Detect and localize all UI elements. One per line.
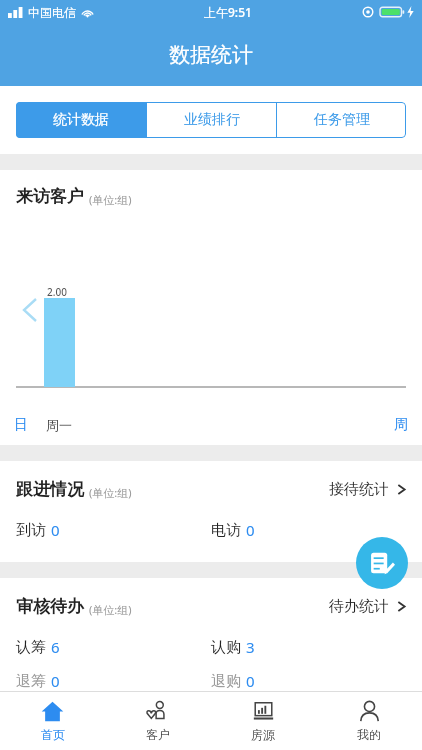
staticText: 房源: [251, 727, 275, 742]
button[interactable]: New record: [356, 537, 408, 589]
staticText: 电访: [211, 521, 241, 540]
staticText: 中国电信: [28, 5, 76, 20]
button[interactable]: 待办统计: [329, 597, 406, 616]
staticText: 统计数据: [53, 111, 109, 129]
button[interactable]: 客户: [105, 692, 210, 750]
staticText: 0: [51, 671, 60, 691]
staticText: 任务管理: [314, 111, 370, 129]
button[interactable]: 首页: [0, 692, 105, 750]
staticText: 3: [246, 637, 255, 657]
staticText: 首页: [41, 727, 65, 742]
staticText: 周: [394, 416, 408, 434]
staticText: 2.00: [47, 285, 67, 299]
staticText: 来访客户: [16, 186, 84, 207]
button[interactable]: 统计数据: [16, 102, 146, 138]
staticText: (单位:组): [89, 602, 132, 617]
staticText: 审核待办: [16, 596, 84, 617]
staticText: 待办统计: [329, 597, 389, 616]
staticText: 认筹: [16, 638, 46, 657]
staticText: 认购: [211, 638, 241, 657]
staticText: 0: [51, 520, 60, 540]
staticText: 我的: [357, 727, 381, 742]
staticText: 周一: [46, 417, 72, 433]
staticText: 到访: [16, 521, 46, 540]
staticText: 接待统计: [329, 480, 389, 499]
staticText: 6: [51, 637, 60, 657]
staticText: 0: [246, 671, 255, 691]
button[interactable]: 我的: [316, 692, 422, 750]
button[interactable]: 房源: [210, 692, 316, 750]
staticText: 退购: [211, 672, 241, 691]
staticText: 客户: [146, 727, 170, 742]
staticText: 退筹: [16, 672, 46, 691]
button[interactable]: 周: [394, 416, 408, 434]
staticText: 日: [14, 416, 28, 434]
staticText: 跟进情况: [16, 479, 84, 500]
button[interactable]: 任务管理: [277, 102, 406, 138]
button[interactable]: 业绩排行: [147, 102, 276, 138]
staticText: 数据统计: [169, 42, 253, 68]
staticText: (单位:组): [89, 485, 132, 500]
staticText: 上午9:51: [204, 4, 252, 20]
staticText: 业绩排行: [184, 111, 240, 129]
staticText: 0: [246, 520, 255, 540]
button[interactable]: 日: [14, 416, 28, 434]
button[interactable]: 接待统计: [329, 480, 406, 499]
staticText: (单位:组): [89, 192, 132, 207]
